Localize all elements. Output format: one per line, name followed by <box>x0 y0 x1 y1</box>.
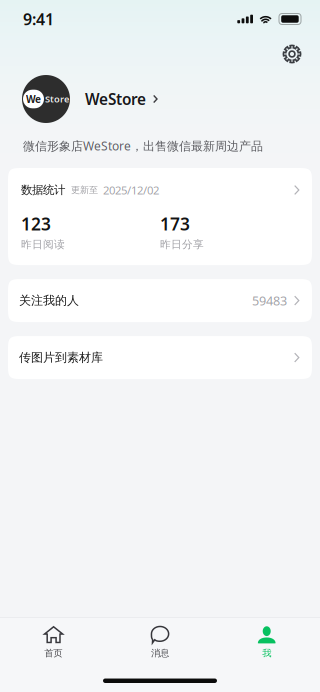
button[interactable]: 数据统计 <box>8 168 312 265</box>
staticText: 传图片到素材库 <box>19 350 103 365</box>
button[interactable]: 关注我的人 <box>8 279 312 322</box>
staticText: 关注我的人 <box>19 293 79 308</box>
button[interactable]: 消息 <box>107 622 213 662</box>
staticText: 昨日分享 <box>160 238 204 251</box>
staticText: Store <box>45 93 69 105</box>
staticText: We <box>26 92 41 106</box>
staticText: 2025/12/02 <box>103 182 159 198</box>
staticText: 昨日阅读 <box>21 238 65 251</box>
staticText: WeStore <box>85 89 146 109</box>
staticText: 9:41 <box>23 8 54 30</box>
button[interactable]: 首页 <box>0 622 107 662</box>
button[interactable]: 我 <box>213 622 320 662</box>
staticText: 更新至 <box>71 184 98 196</box>
staticText: 数据统计 <box>21 183 65 197</box>
staticText: 59483 <box>252 292 287 309</box>
staticText: 173 <box>160 212 190 236</box>
button[interactable]: We <box>22 70 320 128</box>
staticText: 微信形象店WeStore，出售微信最新周边产品 <box>23 138 263 154</box>
staticText: 消息 <box>151 647 169 659</box>
staticText: 我 <box>262 647 271 659</box>
staticText: 123 <box>21 212 51 236</box>
button[interactable]: 传图片到素材库 <box>8 336 312 379</box>
button[interactable]: Settings <box>275 39 309 69</box>
staticText: 首页 <box>44 647 62 659</box>
